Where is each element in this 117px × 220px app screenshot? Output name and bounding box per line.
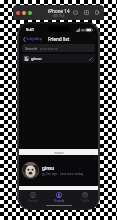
staticText: Friends [54, 199, 65, 203]
button[interactable]: Friends [46, 190, 72, 203]
staticText: tinyblip [27, 36, 43, 42]
staticText: ginsu [42, 165, 55, 171]
button[interactable]: tinyblip [22, 35, 44, 43]
button[interactable]: Home [72, 9, 79, 16]
button[interactable]: More options [94, 9, 101, 16]
button[interactable]: Search [22, 44, 95, 52]
button[interactable]: ginsu [22, 54, 95, 63]
button[interactable] [22, 162, 39, 179]
button[interactable]: Profile [72, 190, 98, 203]
staticText: History [28, 199, 38, 203]
button[interactable]: Edit friend [88, 56, 93, 61]
staticText: Friend list [48, 36, 70, 42]
staticText: Profile [81, 199, 90, 203]
staticText: iPhone 14 [48, 8, 70, 14]
staticText: ginsu [31, 56, 42, 61]
staticText: username [40, 46, 59, 51]
button[interactable]: History [19, 190, 46, 203]
button[interactable]: More [92, 156, 96, 160]
button[interactable]: Minimise [22, 11, 26, 15]
button[interactable]: Screenshot [83, 9, 90, 16]
staticText: iOS 16.4 [53, 14, 65, 18]
staticText: Search [25, 46, 38, 51]
button[interactable] [54, 152, 64, 154]
button[interactable]: Zoom [28, 11, 32, 15]
staticText: 2m ago · Last seen today [46, 172, 84, 176]
button[interactable]: Close [16, 11, 20, 15]
staticText: 9:41 [26, 27, 34, 32]
